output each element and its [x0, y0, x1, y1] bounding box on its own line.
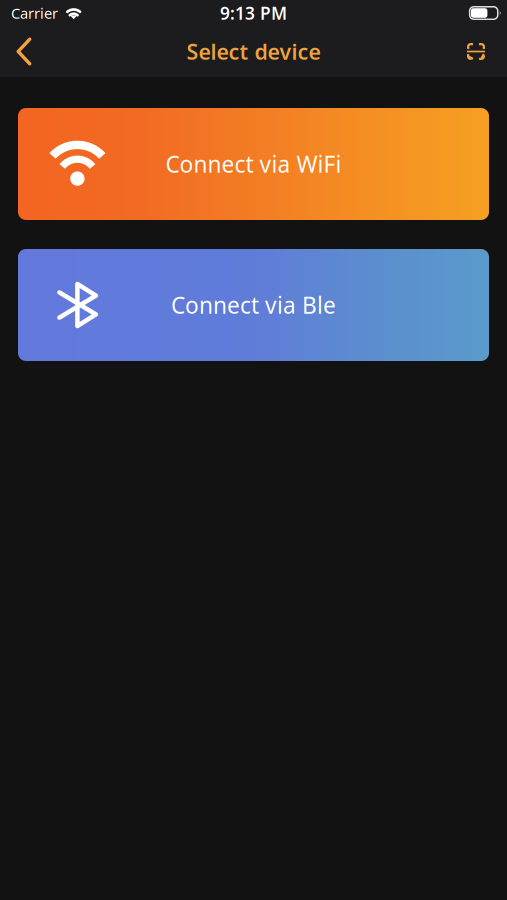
button[interactable]: Scan QR code: [454, 29, 498, 73]
button[interactable]: Connect via WiFi: [18, 108, 489, 220]
button[interactable]: Connect via Ble: [18, 249, 489, 361]
staticText: Connect via WiFi: [165, 149, 341, 179]
staticText: 9:13 PM: [220, 1, 287, 24]
staticText: Select device: [186, 37, 320, 66]
button[interactable]: Back: [2, 29, 46, 73]
staticText: Connect via Ble: [171, 290, 336, 320]
staticText: Carrier: [11, 3, 58, 23]
